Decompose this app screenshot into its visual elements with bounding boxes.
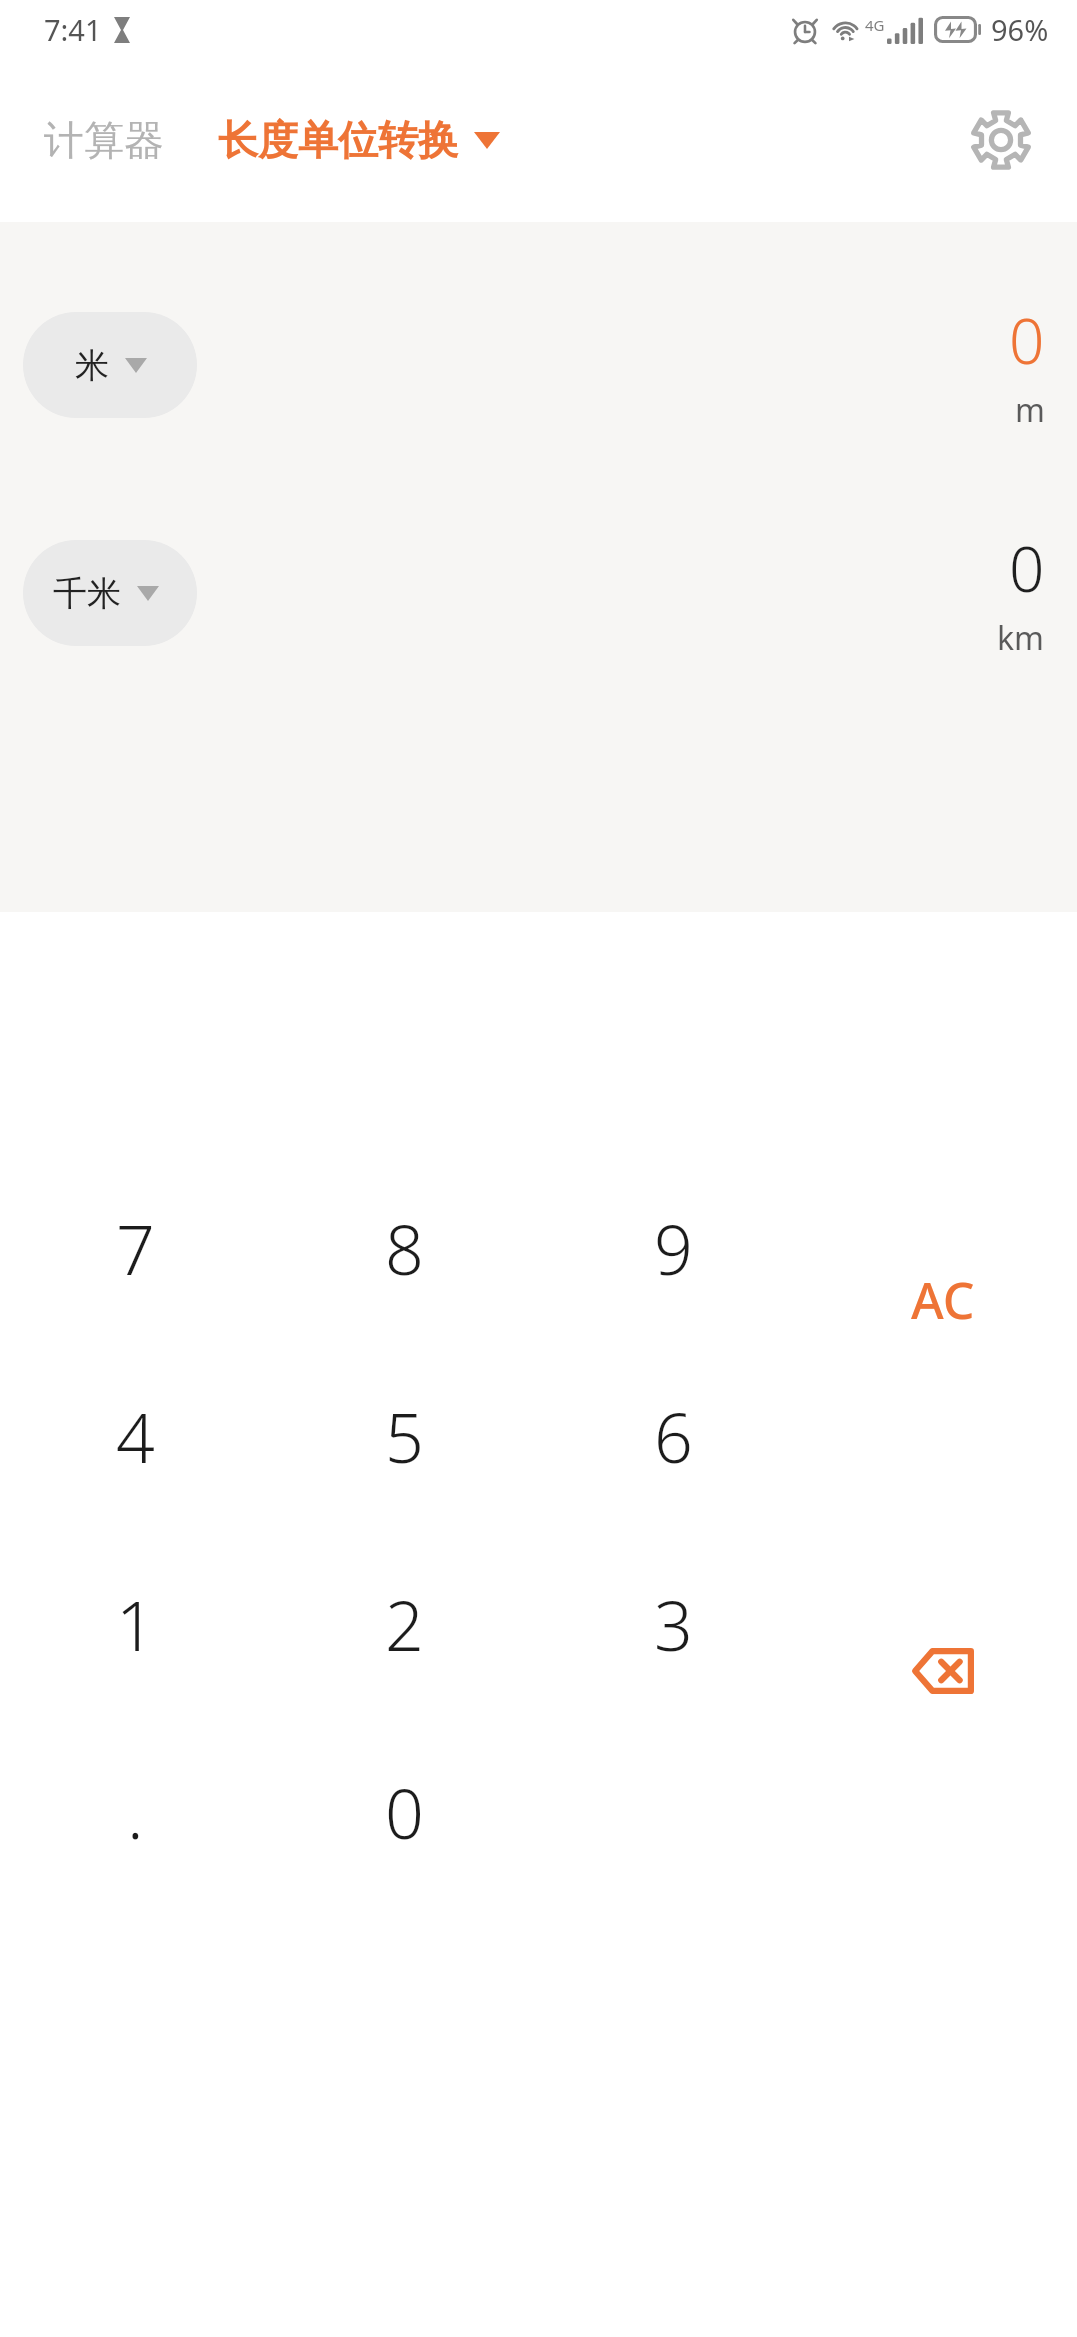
button[interactable]: 计算器 bbox=[38, 101, 170, 179]
staticText: 0 bbox=[1009, 298, 1045, 382]
button[interactable]: 9 bbox=[539, 1154, 808, 1342]
staticText: 长度单位转换 bbox=[218, 115, 458, 165]
button[interactable]: 米 bbox=[23, 312, 197, 418]
staticText: 9 bbox=[654, 1202, 693, 1295]
staticText: 2 bbox=[385, 1578, 424, 1671]
button[interactable]: 0 bbox=[270, 1718, 539, 1906]
staticText: 4 bbox=[116, 1390, 155, 1483]
staticText: . bbox=[127, 1766, 144, 1859]
button[interactable]: 2 bbox=[270, 1530, 539, 1718]
button[interactable]: 8 bbox=[270, 1154, 539, 1342]
button[interactable]: 3 bbox=[539, 1530, 808, 1718]
button[interactable]: 米 bbox=[0, 290, 1077, 440]
button[interactable]: 千米 bbox=[0, 518, 1077, 668]
button[interactable]: 千米 bbox=[23, 540, 197, 646]
button[interactable]: 7 bbox=[0, 1154, 270, 1342]
staticText: 4G bbox=[865, 15, 885, 35]
button[interactable]: 长度单位转换 bbox=[212, 101, 506, 179]
staticText: 8 bbox=[385, 1202, 424, 1295]
staticText: km bbox=[997, 616, 1045, 660]
staticText: 3 bbox=[654, 1578, 693, 1671]
staticText: 7 bbox=[116, 1202, 155, 1295]
button[interactable]: 1 bbox=[0, 1530, 270, 1718]
button[interactable]: 4 bbox=[0, 1342, 270, 1530]
staticText: 5 bbox=[385, 1390, 424, 1483]
button[interactable]: . bbox=[0, 1718, 270, 1906]
staticText: AC bbox=[911, 1266, 975, 1334]
button[interactable]: AC bbox=[808, 1154, 1077, 1342]
button[interactable]: 6 bbox=[539, 1342, 808, 1530]
other: Backspace bbox=[808, 1648, 1077, 1718]
staticText: 6 bbox=[654, 1390, 693, 1483]
staticText: 0 bbox=[385, 1766, 424, 1859]
staticText: m bbox=[1015, 388, 1045, 432]
staticText: 米 bbox=[75, 344, 109, 387]
staticText: 96% bbox=[991, 10, 1049, 49]
button[interactable]: 5 bbox=[270, 1342, 539, 1530]
staticText: 千米 bbox=[53, 572, 121, 615]
staticText: 计算器 bbox=[44, 115, 164, 165]
button[interactable]: Settings bbox=[955, 94, 1047, 186]
button[interactable]: Backspace bbox=[808, 1530, 1077, 1718]
staticText: 0 bbox=[1009, 526, 1045, 610]
staticText: 7:41 bbox=[44, 10, 102, 49]
staticText: 1 bbox=[116, 1578, 155, 1671]
